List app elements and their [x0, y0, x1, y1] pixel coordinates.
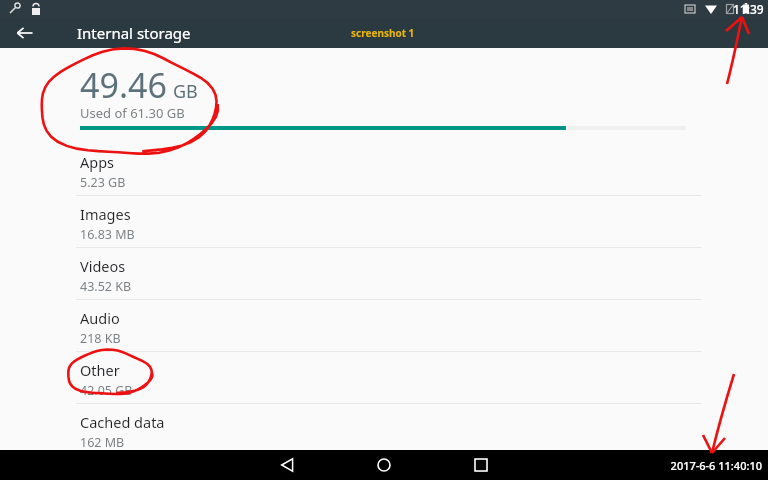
button[interactable]: Home [369, 450, 399, 480]
staticText: Other [80, 360, 120, 380]
staticText: 16.83 MB [80, 226, 135, 243]
button[interactable]: Cached data [0, 404, 768, 456]
staticText: 218 KB [80, 330, 121, 347]
button[interactable]: Audio [0, 300, 768, 352]
staticText: Internal storage [77, 23, 191, 43]
staticText: 42.05 GB [80, 382, 133, 399]
staticText: screenshot 1 [351, 26, 415, 40]
staticText: Audio [80, 308, 120, 328]
button[interactable]: Other [0, 352, 768, 404]
staticText: 43.52 KB [80, 278, 132, 295]
staticText: 49.46 [80, 62, 167, 108]
staticText: Apps [80, 152, 115, 172]
button[interactable]: Images [0, 196, 768, 248]
staticText: GB [173, 79, 198, 104]
button[interactable]: Recents [466, 450, 496, 480]
button[interactable]: Apps [0, 144, 768, 196]
button[interactable]: Videos [0, 248, 768, 300]
button[interactable]: Back [272, 450, 302, 480]
staticText: Used of 61.30 GB [80, 104, 185, 122]
button[interactable]: Back [10, 18, 40, 48]
staticText: 2017-6-6 11:40:10 [670, 458, 762, 473]
staticText: Videos [80, 256, 126, 276]
staticText: 11:39 [733, 1, 764, 17]
staticText: 5.23 GB [80, 174, 126, 191]
staticText: 162 MB [80, 434, 125, 451]
staticText: Images [80, 204, 131, 224]
staticText: Cached data [80, 412, 165, 432]
